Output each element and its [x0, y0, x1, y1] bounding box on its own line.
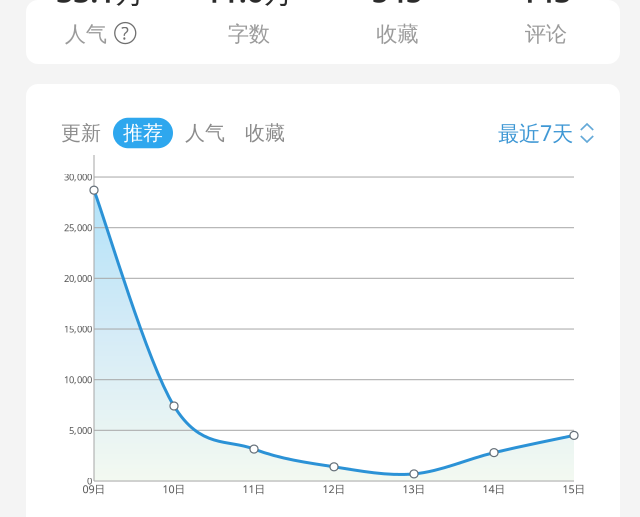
button[interactable]: 字数 — [174, 17, 323, 51]
staticText: 13日 — [402, 482, 425, 496]
staticText: 09日 — [82, 482, 105, 496]
button[interactable]: 更新 — [53, 118, 109, 148]
button[interactable]: 最近7天 — [498, 115, 594, 151]
button[interactable]: 人气 — [26, 17, 174, 51]
staticText: 33.1万 — [56, 0, 144, 11]
button[interactable]: 评论 — [471, 17, 620, 51]
button[interactable]: 收藏 — [237, 118, 293, 148]
button[interactable]: 人气 — [177, 118, 233, 148]
button[interactable]: 推荐 — [113, 118, 173, 148]
staticText: 最近7天 — [498, 119, 573, 147]
staticText: 25,000 — [64, 221, 92, 234]
staticText: 11日 — [242, 482, 265, 496]
staticText: 15日 — [562, 482, 585, 496]
staticText: 收藏 — [245, 121, 285, 145]
staticText: ? — [121, 21, 129, 44]
staticText: 12日 — [322, 482, 345, 496]
button[interactable]: 收藏 — [323, 17, 471, 51]
staticText: 收藏 — [376, 21, 418, 47]
staticText: 11.6万 — [205, 0, 293, 11]
staticText: 5,000 — [69, 424, 92, 436]
staticText: 推荐 — [123, 121, 163, 145]
staticText: 30,000 — [64, 171, 92, 183]
staticText: 人气 — [185, 121, 225, 145]
staticText: 20,000 — [64, 272, 92, 284]
staticText: 人气 — [65, 21, 107, 47]
staticText: 评论 — [525, 21, 567, 47]
staticText: 0 — [87, 475, 92, 487]
staticText: 14日 — [482, 482, 505, 496]
staticText: 545 — [372, 0, 423, 11]
staticText: 字数 — [228, 21, 270, 47]
staticText: 更新 — [61, 121, 101, 145]
staticText: 10日 — [162, 482, 185, 496]
staticText: 143 — [520, 0, 571, 11]
staticText: 15,000 — [64, 323, 92, 335]
staticText: 10,000 — [64, 373, 92, 386]
